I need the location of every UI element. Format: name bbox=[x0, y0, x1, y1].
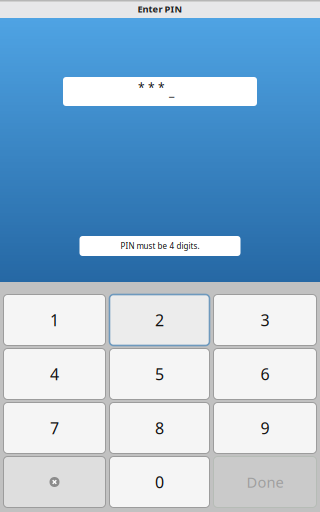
button[interactable]: 8 bbox=[109, 402, 209, 453]
button[interactable]: 0 bbox=[109, 456, 209, 507]
staticText: 9 bbox=[260, 417, 269, 439]
staticText: 7 bbox=[50, 417, 59, 439]
button[interactable]: 6 bbox=[213, 348, 316, 399]
button[interactable]: 3 bbox=[213, 294, 316, 345]
staticText: 4 bbox=[50, 363, 59, 385]
staticText: 1 bbox=[50, 309, 59, 331]
button[interactable]: 1 bbox=[3, 294, 105, 345]
button[interactable]: 5 bbox=[109, 348, 209, 399]
staticText: 2 bbox=[155, 309, 164, 331]
staticText: 3 bbox=[260, 309, 269, 331]
staticText: Done bbox=[246, 472, 283, 492]
button[interactable]: Done bbox=[213, 456, 316, 507]
staticText: Enter PIN bbox=[137, 3, 182, 15]
staticText: 0 bbox=[155, 471, 164, 493]
staticText: PIN must be 4 digits. bbox=[120, 241, 199, 251]
staticText: 8 bbox=[155, 417, 164, 439]
button[interactable]: 7 bbox=[3, 402, 105, 453]
button[interactable]: 4 bbox=[3, 348, 105, 399]
button[interactable]: 9 bbox=[213, 402, 316, 453]
staticText: _ bbox=[169, 83, 174, 99]
button[interactable]: 2 bbox=[109, 294, 209, 345]
button[interactable]: Delete bbox=[3, 456, 105, 507]
staticText: 6 bbox=[260, 363, 269, 385]
staticText: 5 bbox=[155, 363, 164, 385]
staticText: * * * bbox=[138, 79, 165, 95]
